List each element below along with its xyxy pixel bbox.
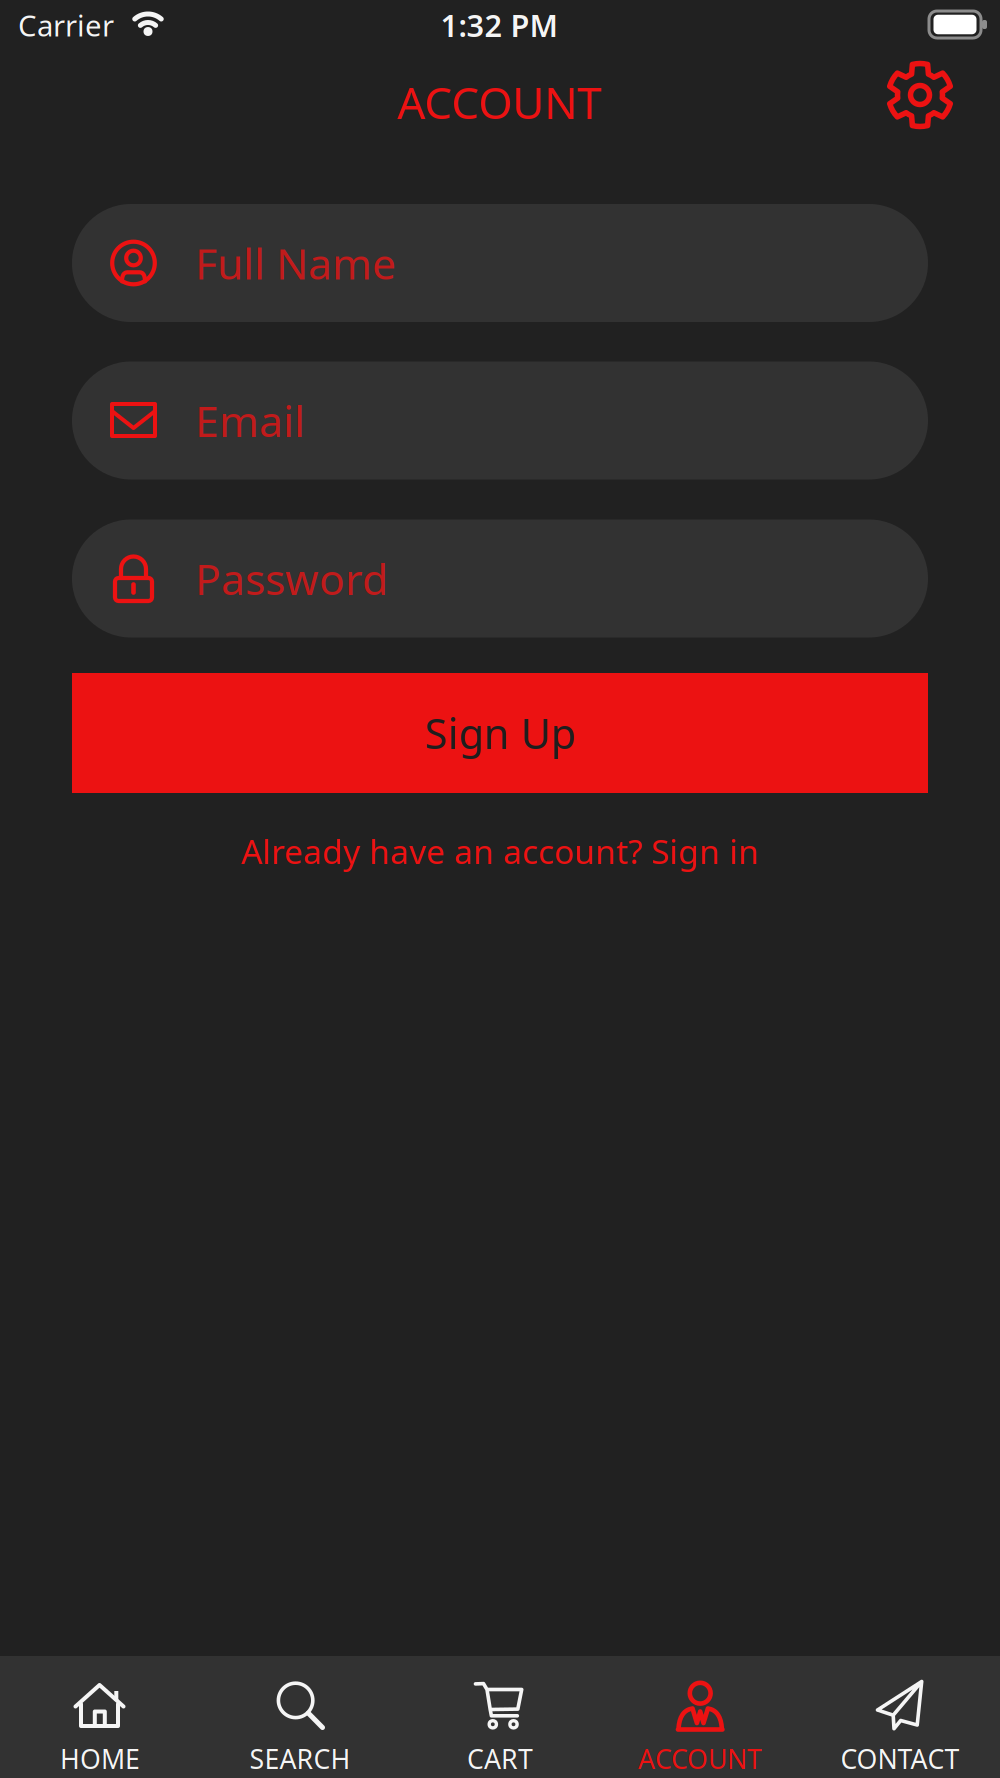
staticText: Already have an account? Sign in [241, 829, 759, 873]
button[interactable]: SEARCH [200, 1656, 400, 1778]
button[interactable]: Already have an account? Sign in [241, 829, 759, 873]
staticText: Sign Up [424, 706, 575, 760]
staticText: CONTACT [840, 1741, 959, 1776]
button[interactable] [887, 62, 953, 128]
staticText: 1:32 PM [440, 5, 557, 45]
button[interactable]: Email [72, 361, 928, 479]
button[interactable]: Sign Up [72, 673, 928, 793]
button[interactable]: ACCOUNT [600, 1656, 800, 1778]
staticText: Full Name [195, 235, 396, 291]
staticText: CART [467, 1741, 533, 1776]
staticText: Carrier [18, 5, 114, 44]
button[interactable]: Full Name [72, 204, 928, 322]
button[interactable]: CONTACT [800, 1656, 1000, 1778]
staticText: Email [195, 392, 305, 449]
button[interactable]: CART [400, 1656, 600, 1778]
staticText: HOME [60, 1741, 140, 1776]
staticText: Password [195, 550, 388, 607]
staticText: SEARCH [249, 1741, 350, 1776]
button[interactable]: HOME [0, 1656, 200, 1778]
staticText: ACCOUNT [638, 1741, 762, 1776]
staticText: ACCOUNT [397, 73, 601, 131]
button[interactable]: Password [72, 519, 928, 637]
